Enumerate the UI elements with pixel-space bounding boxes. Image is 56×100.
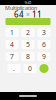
button[interactable]: 5 <box>21 40 34 49</box>
staticText: 2 <box>26 28 30 37</box>
staticText: 0 <box>28 64 32 73</box>
button[interactable]: . <box>7 64 20 73</box>
staticText: 9:41 <box>24 0 31 5</box>
staticText: . <box>13 64 15 73</box>
staticText: 64 <box>14 9 24 20</box>
button[interactable]: 8 <box>21 52 34 61</box>
button[interactable]: 7 <box>5 52 18 61</box>
staticText: 6 <box>42 40 46 49</box>
button[interactable]: 6 <box>37 40 50 49</box>
staticText: 11 <box>32 9 42 20</box>
staticText: × <box>26 10 30 19</box>
staticText: 4 <box>10 40 14 49</box>
staticText: 9 <box>42 52 46 61</box>
staticText: 7 <box>10 52 14 61</box>
button[interactable]: 3 <box>37 28 50 37</box>
staticText: Multiplication <box>5 4 37 12</box>
staticText: 8 <box>26 52 30 61</box>
button[interactable]: 0 <box>23 64 36 73</box>
button[interactable]: 9 <box>37 52 50 61</box>
staticText: 3 <box>42 28 46 37</box>
button[interactable]: Submit <box>39 64 48 73</box>
staticText: 1 <box>10 28 14 37</box>
button[interactable]: 2 <box>21 28 34 37</box>
button[interactable]: 1 <box>5 28 18 37</box>
staticText: 5 <box>26 40 30 49</box>
button[interactable]: 4 <box>5 40 18 49</box>
